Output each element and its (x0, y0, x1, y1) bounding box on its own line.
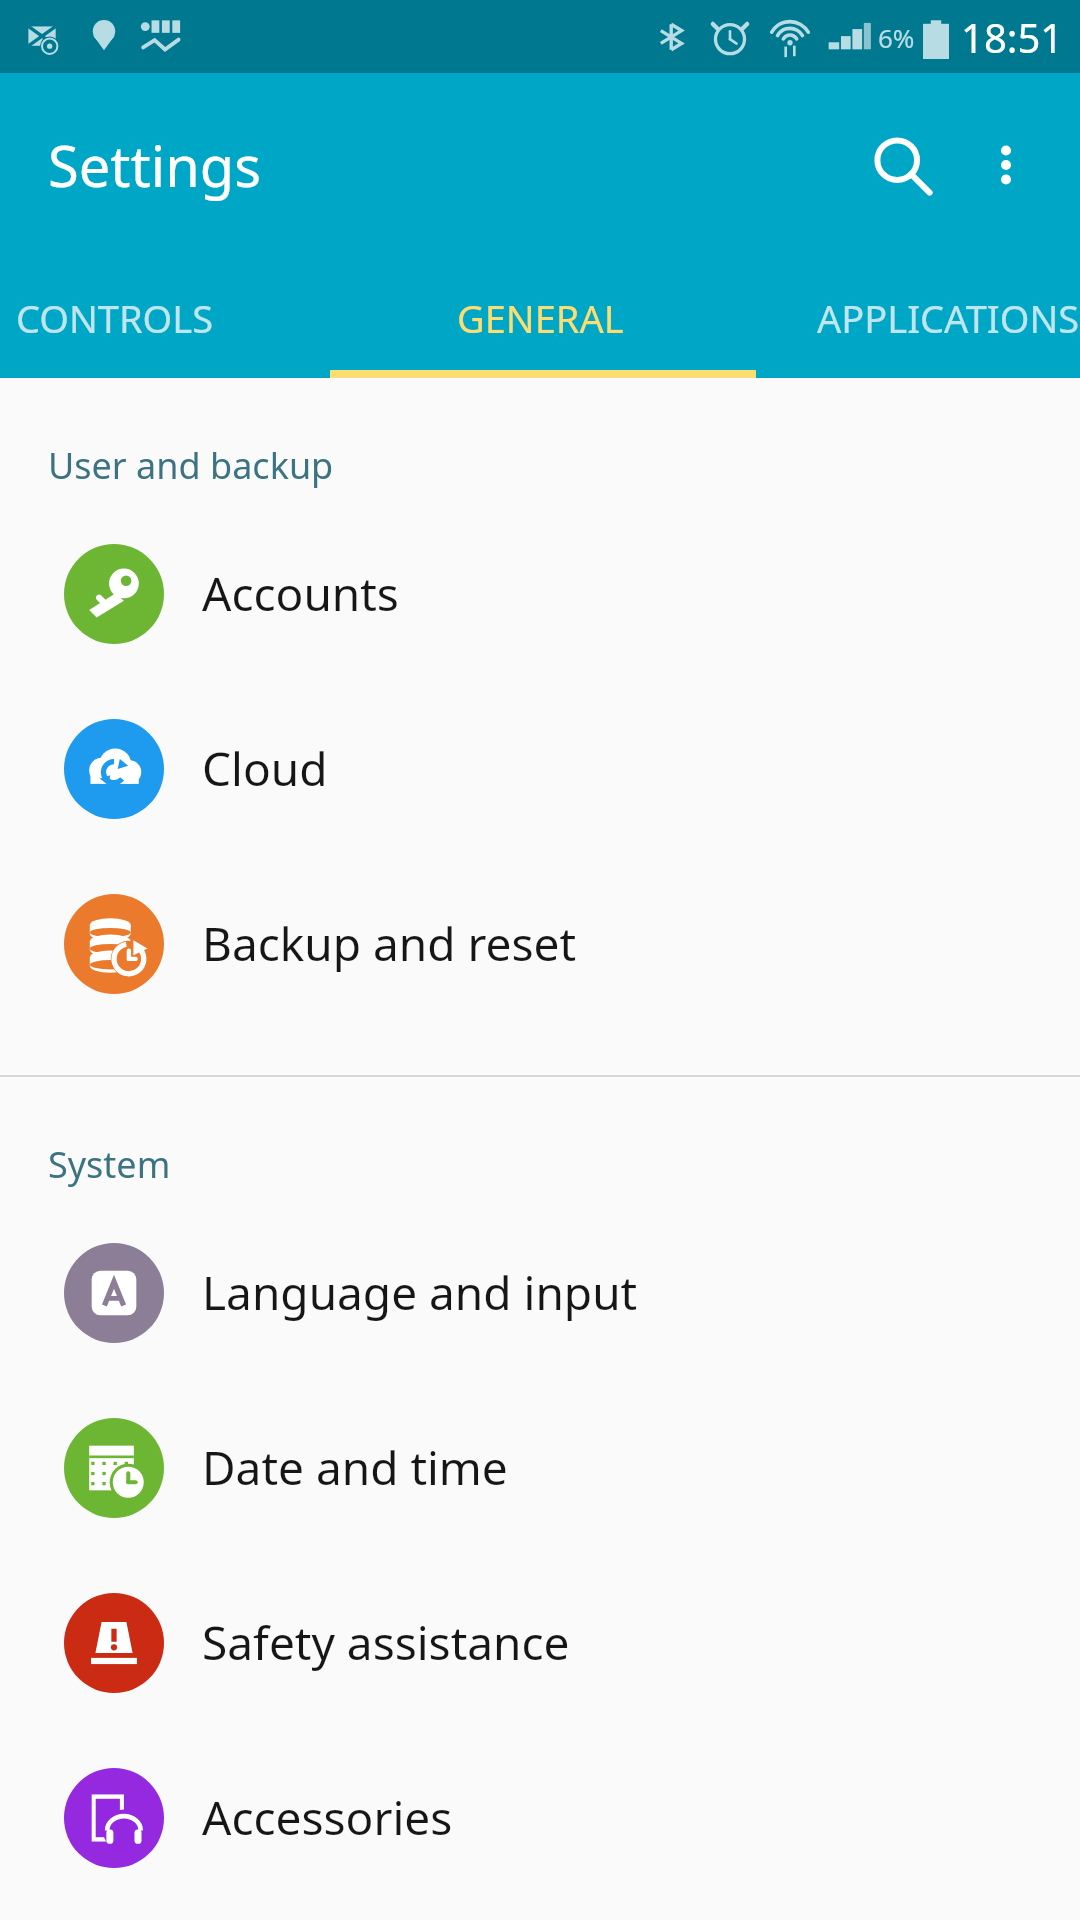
staticText: Cloud (202, 737, 328, 800)
button[interactable]: Cloud (0, 681, 1080, 856)
staticText: System (48, 1140, 171, 1189)
button[interactable]: Date and time (0, 1380, 1080, 1555)
button[interactable]: Accessories (0, 1730, 1080, 1905)
button[interactable]: GENERAL (360, 257, 720, 378)
staticText: CONTROLS (16, 292, 214, 344)
staticText: Safety assistance (202, 1611, 570, 1674)
button[interactable]: More options (958, 117, 1054, 213)
staticText: 6% (878, 20, 915, 55)
staticText: Date and time (202, 1436, 508, 1499)
staticText: User and backup (48, 441, 334, 490)
staticText: Backup and reset (202, 912, 577, 975)
staticText: Language and input (202, 1261, 638, 1324)
staticText: Accessories (202, 1786, 453, 1849)
staticText: 18:51 (961, 10, 1064, 64)
staticText: GENERAL (457, 292, 624, 344)
button[interactable]: Language and input (0, 1205, 1080, 1380)
button[interactable]: CONTROLS (0, 257, 360, 378)
button[interactable]: Search (846, 109, 958, 221)
staticText: APPLICATIONS (817, 292, 1080, 344)
button[interactable]: Safety assistance (0, 1555, 1080, 1730)
staticText: Settings (48, 127, 262, 203)
button[interactable]: APPLICATIONS (720, 257, 1080, 378)
button[interactable]: Accounts (0, 506, 1080, 681)
button[interactable]: Backup and reset (0, 856, 1080, 1031)
staticText: Accounts (202, 562, 399, 625)
